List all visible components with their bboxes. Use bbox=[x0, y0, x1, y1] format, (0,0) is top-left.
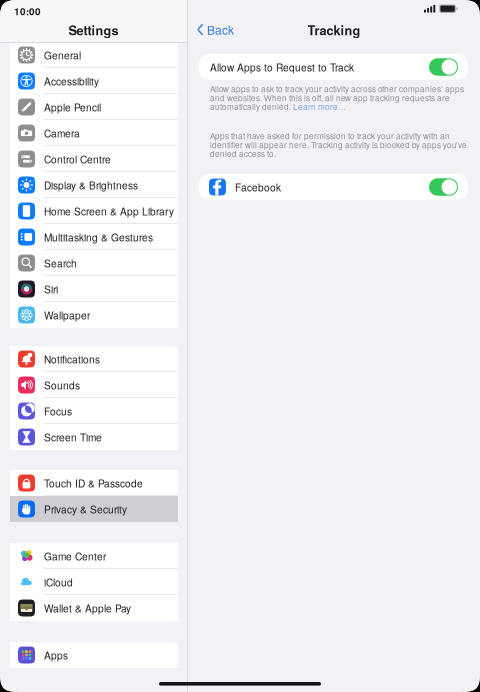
button[interactable]: Notifications bbox=[10, 346, 178, 372]
staticText: Accessibility bbox=[44, 74, 99, 88]
button[interactable]: Game Center bbox=[10, 543, 178, 569]
staticText: Screen Time bbox=[44, 430, 102, 444]
button[interactable]: Search bbox=[10, 250, 178, 276]
staticText: General bbox=[44, 48, 81, 62]
staticText: 10:00 bbox=[14, 4, 41, 18]
staticText: Apps that have asked for permission to t… bbox=[210, 130, 450, 142]
button[interactable]: Accessibility bbox=[10, 68, 178, 94]
staticText: Facebook bbox=[235, 180, 281, 194]
staticText: Tracking bbox=[307, 21, 360, 39]
staticText: Home Screen & App Library bbox=[44, 204, 174, 218]
button[interactable]: Privacy & Security bbox=[10, 496, 178, 522]
button[interactable]: Siri bbox=[10, 276, 178, 302]
staticText: Learn more… bbox=[293, 101, 346, 112]
button[interactable]: Learn more… bbox=[293, 101, 346, 112]
button[interactable]: Wallet & Apple Pay bbox=[10, 595, 178, 621]
staticText: Multitasking & Gestures bbox=[44, 230, 153, 244]
button[interactable]: Screen Time bbox=[10, 424, 178, 450]
button[interactable]: Back bbox=[188, 14, 242, 45]
button[interactable]: Toggle, on bbox=[429, 58, 458, 76]
staticText: iCloud bbox=[44, 575, 73, 589]
button[interactable]: General bbox=[10, 42, 178, 68]
staticText: Back bbox=[207, 21, 234, 38]
staticText: Game Center bbox=[44, 549, 106, 563]
button[interactable]: Touch ID & Passcode bbox=[10, 470, 178, 496]
button[interactable]: Focus bbox=[10, 398, 178, 424]
button[interactable]: Control Centre bbox=[10, 146, 178, 172]
button[interactable]: Multitasking & Gestures bbox=[10, 224, 178, 250]
button[interactable]: Apps bbox=[10, 642, 178, 668]
staticText: Wallet & Apple Pay bbox=[44, 601, 131, 615]
staticText: Touch ID & Passcode bbox=[44, 476, 143, 490]
button[interactable]: Allow Apps to Request to Track bbox=[199, 54, 468, 80]
staticText: Allow apps to ask to track your activity… bbox=[210, 83, 464, 95]
button[interactable]: iCloud bbox=[10, 569, 178, 595]
staticText: Notifications bbox=[44, 352, 100, 366]
staticText: denied access to. bbox=[210, 148, 276, 159]
staticText: Settings bbox=[68, 21, 118, 39]
staticText: Sounds bbox=[44, 378, 80, 392]
staticText: Apple Pencil bbox=[44, 100, 101, 114]
button[interactable]: Home Screen & App Library bbox=[10, 198, 178, 224]
staticText: Privacy & Security bbox=[44, 502, 127, 516]
staticText: Search bbox=[44, 256, 77, 270]
staticText: and websites. When this is off, all new … bbox=[210, 92, 450, 103]
staticText: Apps bbox=[44, 648, 68, 662]
staticText: Control Centre bbox=[44, 152, 111, 166]
staticText: Wallpaper bbox=[44, 308, 90, 322]
staticText: identifier will appear here. Tracking ac… bbox=[210, 139, 467, 150]
button[interactable]: Wallpaper bbox=[10, 302, 178, 328]
button[interactable]: Toggle, on bbox=[429, 178, 458, 196]
staticText: Focus bbox=[44, 404, 72, 418]
staticText: automatically denied. bbox=[210, 101, 293, 112]
staticText: Display & Brightness bbox=[44, 178, 138, 192]
button[interactable]: Camera bbox=[10, 120, 178, 146]
button[interactable]: Facebook bbox=[199, 174, 468, 200]
staticText: Siri bbox=[44, 282, 58, 296]
button[interactable]: Sounds bbox=[10, 372, 178, 398]
staticText: Allow Apps to Request to Track bbox=[210, 60, 354, 74]
button[interactable]: Apple Pencil bbox=[10, 94, 178, 120]
button[interactable]: Display & Brightness bbox=[10, 172, 178, 198]
staticText: Camera bbox=[44, 126, 80, 140]
